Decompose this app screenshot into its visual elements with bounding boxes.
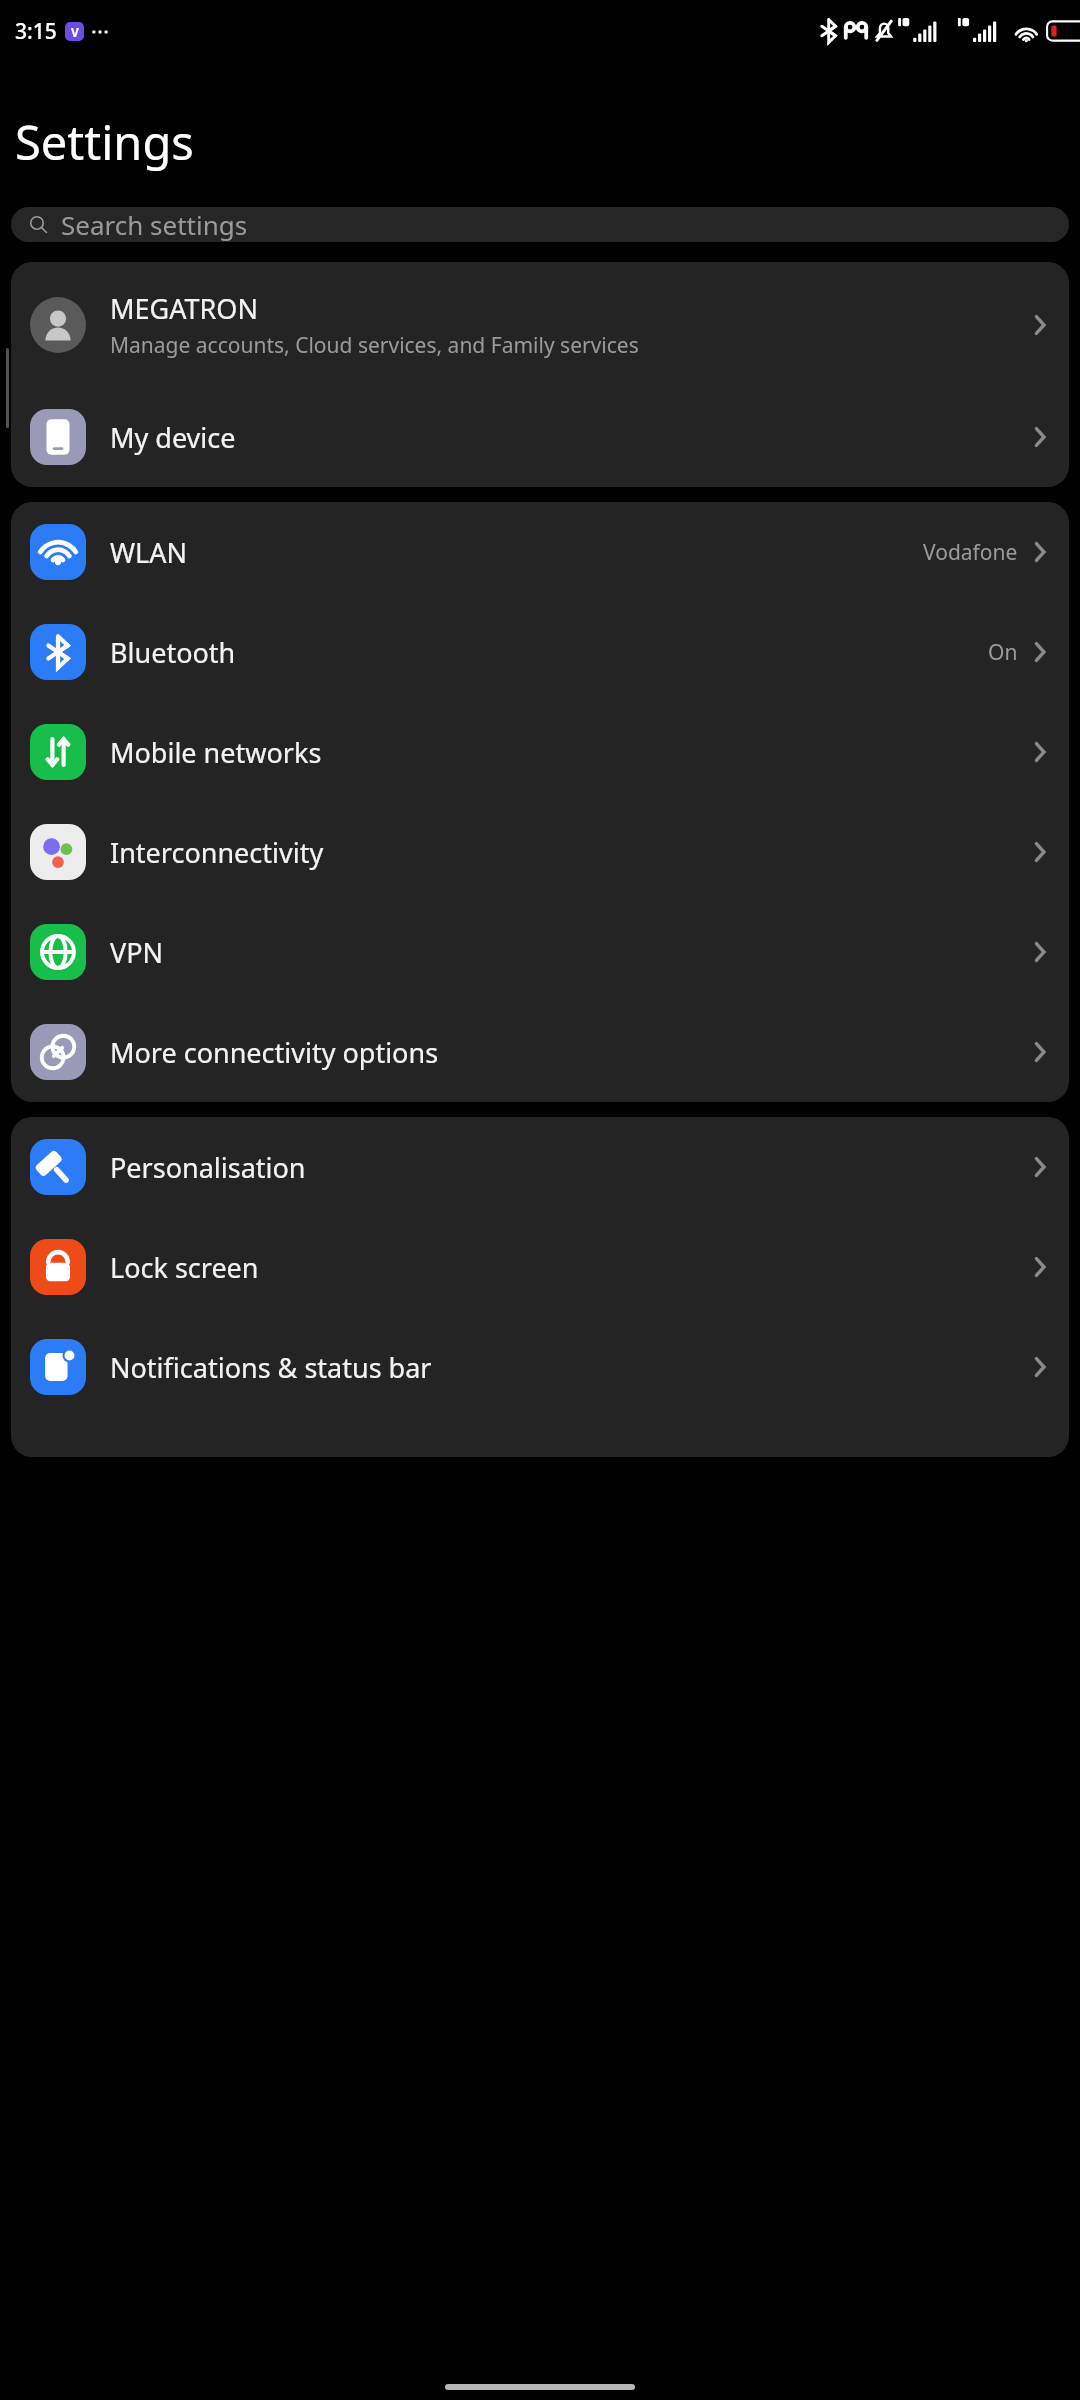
other: Home <box>445 2384 635 2390</box>
button[interactable]: Personalisation <box>11 1117 1069 1217</box>
staticText: My device <box>110 419 1030 456</box>
staticText: Mobile networks <box>110 734 1030 771</box>
button[interactable]: Bluetooth <box>11 602 1069 702</box>
staticText: On <box>988 638 1018 667</box>
button[interactable]: My device <box>11 387 1069 487</box>
button[interactable]: Notifications & status bar <box>11 1317 1069 1417</box>
staticText: Search settings <box>61 207 248 242</box>
button[interactable]: Mobile networks <box>11 702 1069 802</box>
staticText: Settings <box>15 110 194 174</box>
button[interactable]: More connectivity options <box>11 1002 1069 1102</box>
staticText: WLAN <box>110 534 923 571</box>
staticText: VPN <box>110 934 1030 971</box>
button[interactable]: Lock screen <box>11 1217 1069 1317</box>
button[interactable]: VPN <box>11 902 1069 1002</box>
button[interactable]: Interconnectivity <box>11 802 1069 902</box>
staticText: V <box>71 24 79 40</box>
staticText: MEGATRON <box>110 290 258 327</box>
staticText: Manage accounts, Cloud services, and Fam… <box>110 331 639 360</box>
staticText: Personalisation <box>110 1149 1030 1186</box>
staticText: Vodafone <box>923 538 1018 567</box>
staticText: Lock screen <box>110 1249 1030 1286</box>
button[interactable]: WLAN <box>11 502 1069 602</box>
button[interactable]: MEGATRON <box>11 262 1069 387</box>
button[interactable]: Search settings <box>11 207 1069 242</box>
staticText: Notifications & status bar <box>110 1349 1030 1386</box>
staticText: More connectivity options <box>110 1034 1030 1071</box>
staticText: 3:15 <box>15 17 57 46</box>
staticText: Interconnectivity <box>110 834 1030 871</box>
staticText: Bluetooth <box>110 634 988 671</box>
